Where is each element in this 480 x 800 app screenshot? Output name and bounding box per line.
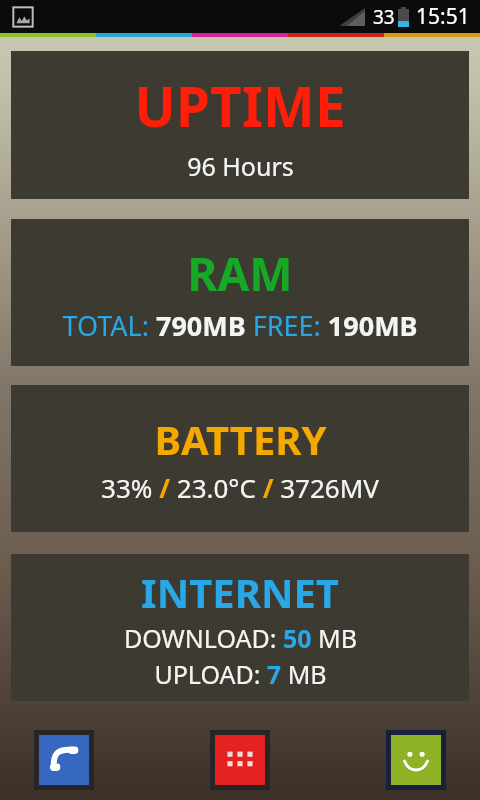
staticText: BATTERY bbox=[154, 412, 327, 466]
button[interactable]: Apps bbox=[215, 735, 265, 785]
staticText: 33 bbox=[373, 4, 395, 30]
staticText: TOTAL: 790MB FREE: 190MB bbox=[62, 307, 418, 344]
staticText: 96 Hours bbox=[187, 149, 294, 183]
staticText: RAM bbox=[187, 242, 293, 305]
staticText: 15:51 bbox=[416, 2, 470, 31]
button[interactable]: Messaging bbox=[391, 735, 441, 785]
button[interactable]: RAM bbox=[11, 219, 469, 366]
button[interactable]: INTERNET bbox=[11, 554, 469, 701]
button[interactable]: Phone bbox=[39, 735, 89, 785]
staticText: UPLOAD: 7 MB bbox=[154, 657, 327, 691]
staticText: 33% / 23.0°C / 3726MV bbox=[101, 470, 379, 505]
staticText: DOWNLOAD: 50 MB bbox=[124, 621, 357, 655]
staticText: UPTIME bbox=[134, 68, 346, 143]
staticText: INTERNET bbox=[141, 565, 339, 619]
button[interactable]: UPTIME bbox=[11, 51, 469, 199]
button[interactable]: BATTERY bbox=[11, 385, 469, 532]
